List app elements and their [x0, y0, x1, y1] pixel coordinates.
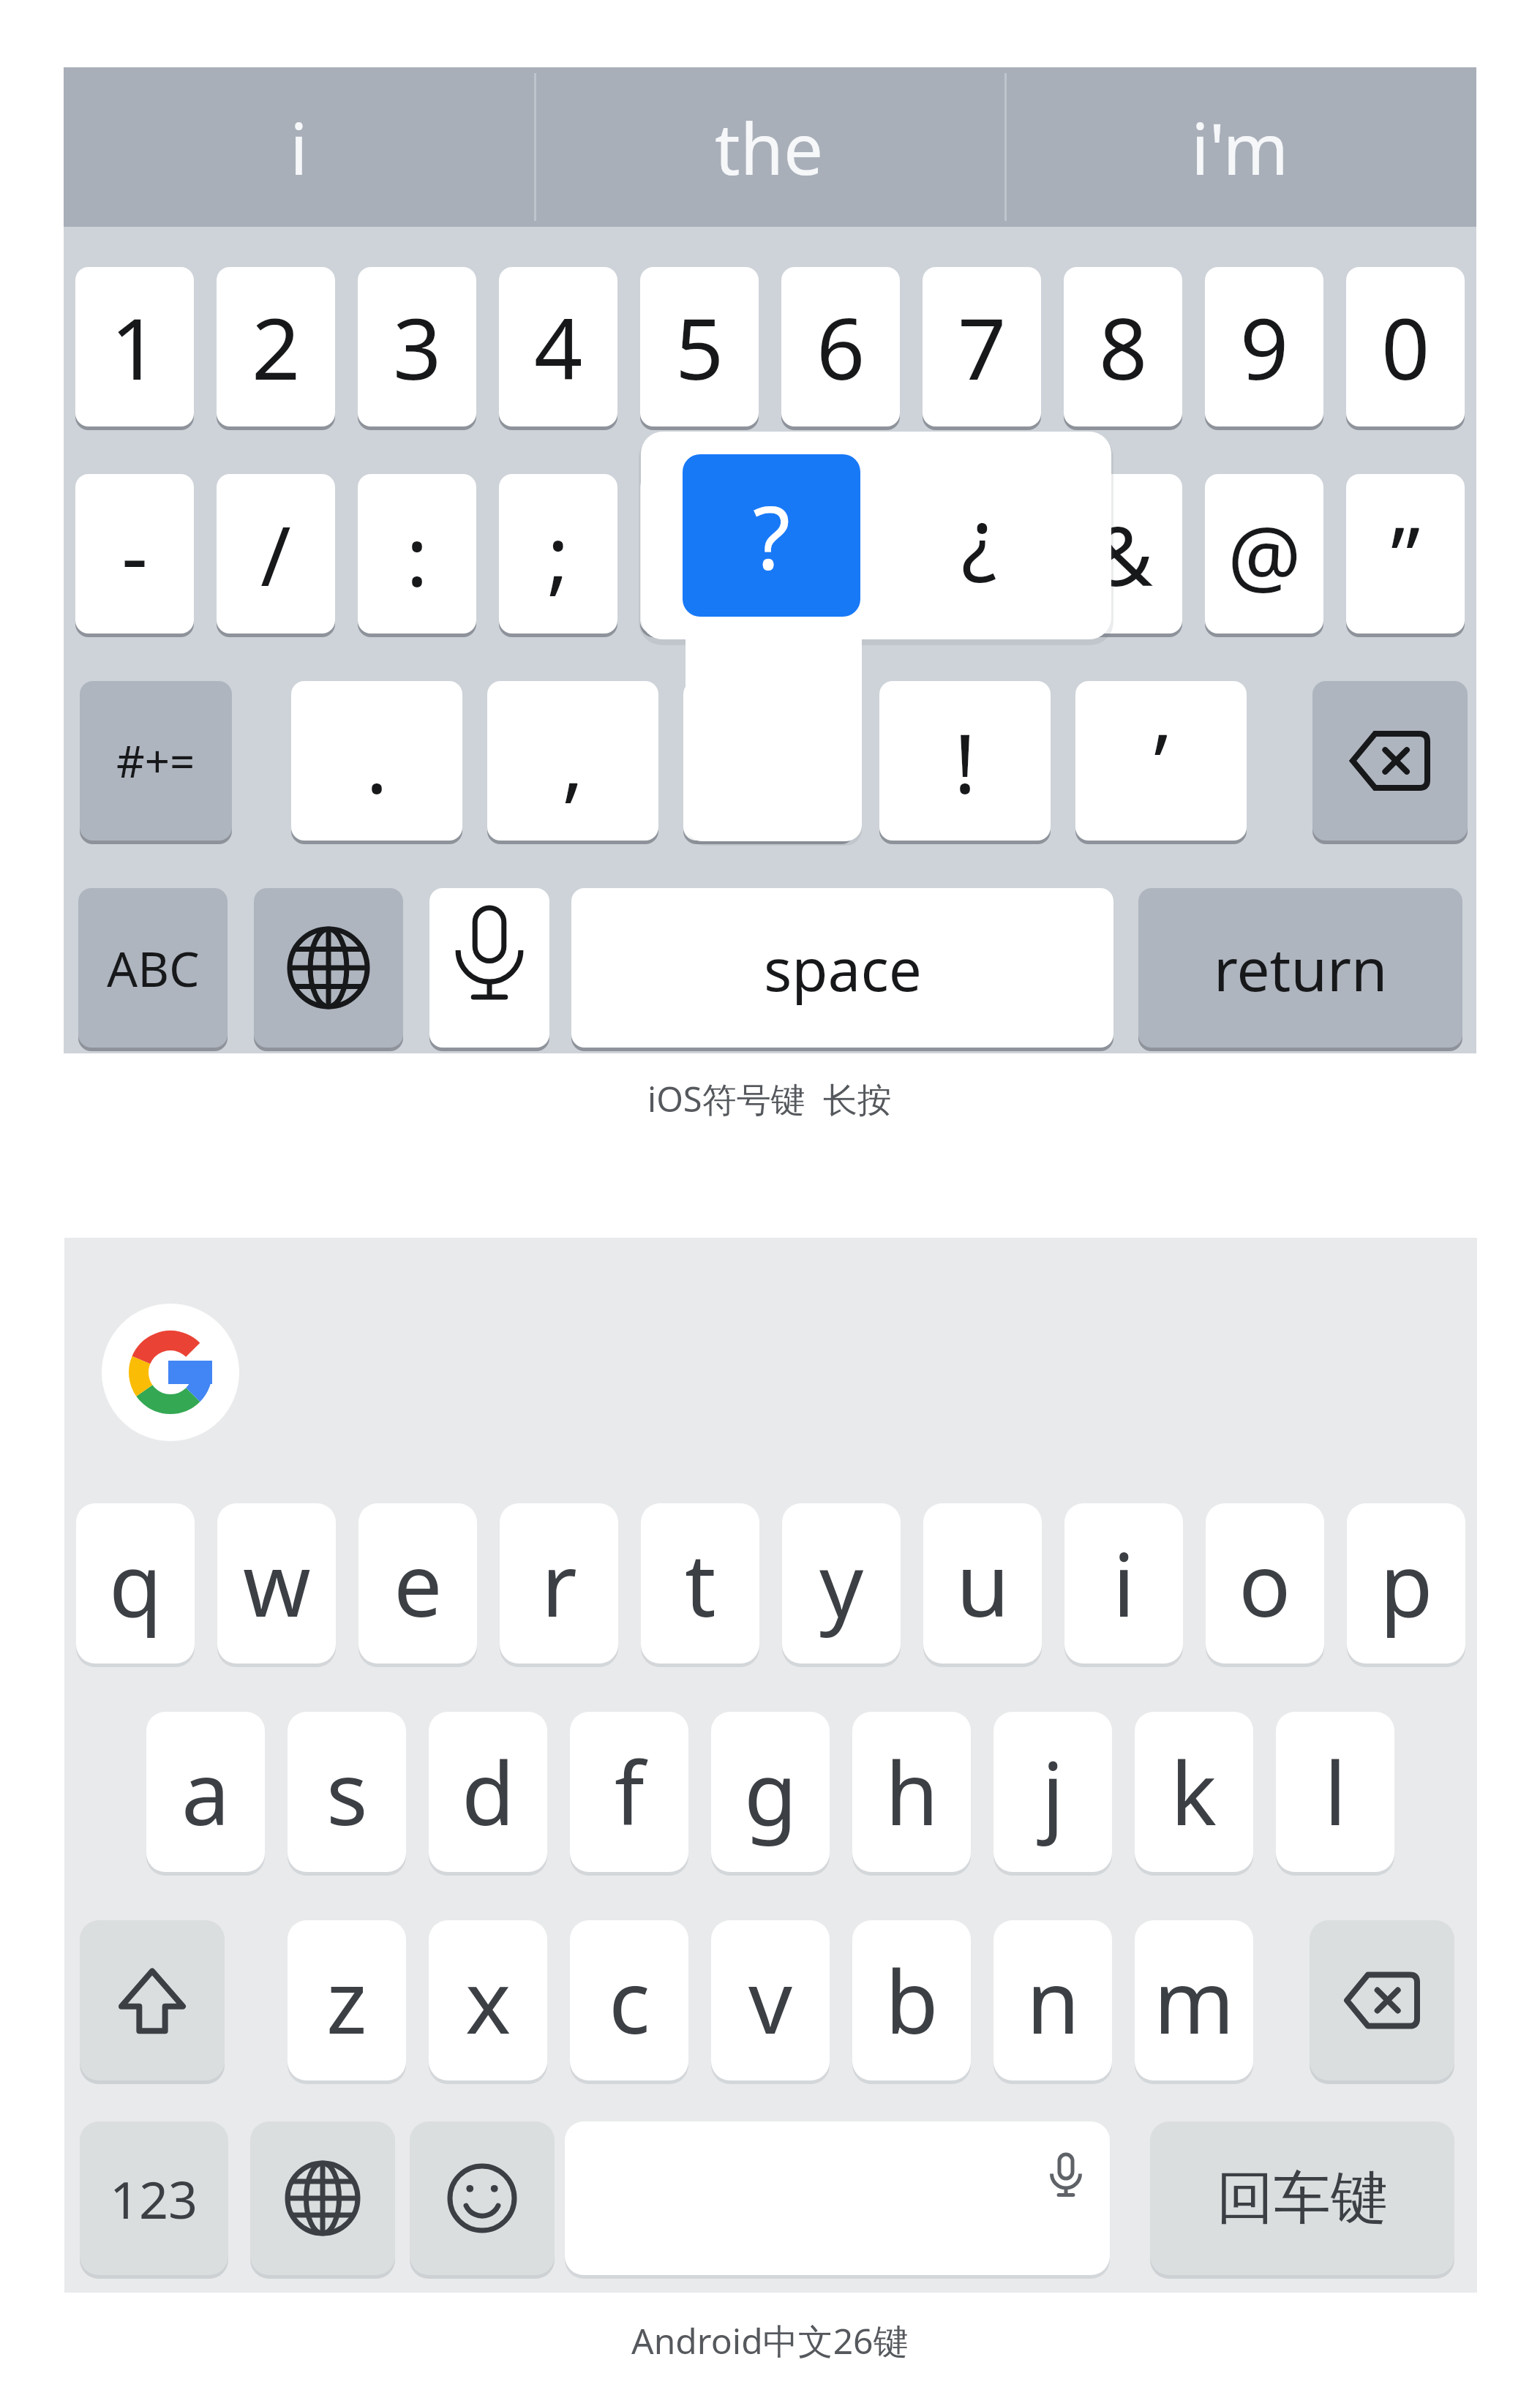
button[interactable]	[254, 888, 403, 1048]
staticText: h	[885, 1733, 939, 1851]
button[interactable]: z	[288, 1920, 406, 2080]
button[interactable]: ?	[683, 454, 860, 617]
button[interactable]	[429, 888, 549, 1048]
button[interactable]: q	[76, 1503, 195, 1663]
staticText: 5	[675, 289, 724, 405]
staticText: return	[1214, 928, 1388, 1008]
button[interactable]: )	[781, 474, 900, 634]
button[interactable]	[250, 2121, 395, 2275]
staticText: m	[1154, 1941, 1235, 2059]
button[interactable]: h	[852, 1712, 971, 1872]
button[interactable]: 5	[640, 267, 759, 426]
button[interactable]: 4	[499, 267, 617, 426]
button[interactable]: 9	[1205, 267, 1323, 426]
button[interactable]: (	[640, 474, 759, 634]
button[interactable]: c	[570, 1920, 688, 2080]
staticText: the	[715, 99, 824, 195]
button[interactable]	[1312, 681, 1468, 841]
staticText: ”	[1391, 498, 1421, 610]
button[interactable]: t	[641, 1503, 759, 1663]
button[interactable]: the	[534, 67, 1004, 227]
button[interactable]: b	[852, 1920, 971, 2080]
button[interactable]: 0	[1346, 267, 1465, 426]
staticText: /	[260, 498, 291, 610]
button[interactable]	[565, 2121, 1110, 2275]
button[interactable]: 7	[923, 267, 1041, 426]
button[interactable]: s	[288, 1712, 406, 1872]
button[interactable]: ”	[1346, 474, 1465, 634]
button[interactable]: a	[146, 1712, 265, 1872]
button[interactable]: ABC	[78, 888, 228, 1048]
staticText: n	[1026, 1941, 1080, 2059]
staticText: i	[290, 99, 308, 195]
button[interactable]: /	[217, 474, 335, 634]
button[interactable]: 6	[781, 267, 900, 426]
button[interactable]: y	[782, 1503, 901, 1663]
staticText: $	[958, 498, 1006, 610]
staticText: z	[326, 1941, 367, 2059]
button[interactable]: l	[1276, 1712, 1394, 1872]
button[interactable]: u	[923, 1503, 1042, 1663]
button[interactable]: i	[1064, 1503, 1183, 1663]
staticText: -	[121, 498, 149, 610]
staticText: v	[748, 1941, 792, 2059]
button[interactable]: 1	[75, 267, 194, 426]
button[interactable]: ,	[487, 681, 658, 841]
button[interactable]: r	[500, 1503, 618, 1663]
button[interactable]	[102, 1304, 239, 1441]
button[interactable]: e	[358, 1503, 477, 1663]
button[interactable]: $	[923, 474, 1041, 634]
button[interactable]: j	[994, 1712, 1112, 1872]
button[interactable]: i	[64, 67, 534, 227]
button[interactable]: .	[291, 681, 462, 841]
button[interactable]: x	[429, 1920, 547, 2080]
button[interactable]: w	[217, 1503, 336, 1663]
button[interactable]: 3	[358, 267, 476, 426]
staticText: :	[406, 498, 429, 610]
button[interactable]: 123	[80, 2121, 228, 2275]
staticText: d	[462, 1733, 515, 1851]
button[interactable]: !	[879, 681, 1051, 841]
button[interactable]: o	[1206, 1503, 1324, 1663]
button[interactable]: f	[570, 1712, 688, 1872]
button[interactable]: ¿	[860, 454, 1097, 617]
button[interactable]: 2	[217, 267, 335, 426]
staticText: 8	[1099, 289, 1148, 405]
button[interactable]: m	[1135, 1920, 1253, 2080]
button[interactable]: &	[1064, 474, 1182, 634]
staticText: #+=	[116, 731, 195, 791]
staticText: 9	[1240, 289, 1289, 405]
button[interactable]: i'm	[1004, 67, 1475, 227]
staticText: i'm	[1191, 99, 1289, 195]
button[interactable]: :	[358, 474, 476, 634]
staticText: ?	[753, 477, 791, 595]
button[interactable]: ’	[1075, 681, 1247, 841]
button[interactable]: n	[994, 1920, 1112, 2080]
button[interactable]: k	[1135, 1712, 1253, 1872]
button[interactable]	[410, 2121, 555, 2275]
button[interactable]: return	[1138, 888, 1462, 1048]
button[interactable]: #+=	[80, 681, 232, 841]
button[interactable]: @	[1205, 474, 1323, 634]
button[interactable]: d	[429, 1712, 547, 1872]
staticText: 123	[110, 2164, 198, 2233]
button[interactable]: ;	[499, 474, 617, 634]
staticText: 1	[110, 289, 159, 405]
staticText: space	[764, 928, 922, 1008]
staticText: ;	[547, 498, 570, 610]
button[interactable]	[683, 681, 854, 841]
staticText: l	[1324, 1733, 1347, 1851]
button[interactable]: v	[711, 1920, 830, 2080]
staticText: &	[1093, 498, 1153, 610]
staticText: i	[1113, 1525, 1135, 1642]
button[interactable]: g	[711, 1712, 830, 1872]
button[interactable]	[80, 1920, 225, 2080]
button[interactable]: space	[571, 888, 1113, 1048]
button[interactable]: p	[1347, 1503, 1465, 1663]
button[interactable]: 8	[1064, 267, 1182, 426]
button[interactable]	[1310, 1920, 1454, 2080]
button[interactable]: 回车键	[1150, 2121, 1454, 2275]
button[interactable]: -	[75, 474, 194, 634]
staticText: a	[181, 1733, 230, 1851]
